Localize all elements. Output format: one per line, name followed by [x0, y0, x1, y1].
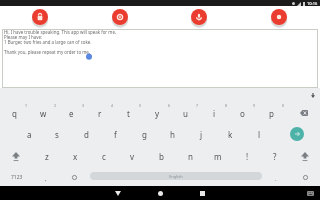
staticText: 3 [82, 103, 85, 108]
button[interactable] [304, 186, 316, 200]
staticText: 1 [25, 103, 28, 108]
staticText: 7123 [11, 174, 23, 181]
staticText: 4 [111, 103, 114, 108]
staticText: e [69, 108, 74, 119]
button[interactable]: m [206, 146, 230, 166]
staticText: 8 [225, 103, 228, 108]
button[interactable]: n [178, 146, 202, 166]
button[interactable] [108, 186, 128, 200]
staticText: d [84, 129, 89, 140]
staticText: 2 [54, 103, 57, 108]
button[interactable] [192, 186, 212, 200]
button[interactable] [293, 104, 315, 122]
staticText: 7 [196, 103, 199, 108]
button[interactable]: j [189, 124, 213, 144]
button[interactable]: h [160, 124, 184, 144]
button[interactable]: v [120, 146, 144, 166]
button[interactable]: ! [235, 146, 259, 166]
staticText: ! [246, 151, 249, 162]
button[interactable] [191, 9, 207, 25]
button[interactable]: z [35, 146, 59, 166]
staticText: x [73, 151, 78, 162]
button[interactable]: a [17, 124, 41, 144]
staticText: b [159, 151, 164, 162]
staticText: z [45, 151, 49, 162]
staticText: i [213, 108, 216, 119]
button[interactable] [295, 147, 315, 165]
staticText: j [200, 129, 203, 140]
staticText: s [55, 129, 59, 140]
staticText: , [45, 175, 47, 183]
staticText: Hi, I have trouble speaking. This app wi… [4, 29, 117, 56]
button[interactable]: ? [263, 146, 287, 166]
button[interactable] [150, 186, 170, 200]
button[interactable]: b [149, 146, 173, 166]
staticText: r [98, 108, 102, 119]
button[interactable] [271, 9, 287, 25]
staticText: f [114, 129, 117, 140]
staticText: c [102, 151, 106, 162]
button[interactable]: o [230, 103, 254, 123]
staticText: a [27, 129, 32, 140]
button[interactable]: , [34, 169, 58, 189]
staticText: y [155, 108, 160, 119]
staticText: 6 [168, 103, 171, 108]
staticText: English [169, 174, 183, 179]
staticText: 0 [282, 103, 285, 108]
staticText: k [228, 129, 233, 140]
staticText: w [40, 108, 47, 119]
button[interactable]: q [2, 103, 26, 123]
button[interactable]: e [59, 103, 83, 123]
button[interactable]: w [31, 103, 55, 123]
staticText: h [170, 129, 175, 140]
button[interactable]: . [264, 169, 288, 189]
button[interactable] [6, 147, 26, 165]
button[interactable]: p [259, 103, 283, 123]
button[interactable]: t [116, 103, 140, 123]
button[interactable]: 7123 [4, 170, 30, 185]
staticText: 5 [139, 103, 142, 108]
button[interactable]: c [92, 146, 116, 166]
button[interactable]: u [173, 103, 197, 123]
button[interactable]: x [63, 146, 87, 166]
button[interactable] [112, 9, 128, 25]
staticText: n [188, 151, 193, 162]
button[interactable]: i [202, 103, 226, 123]
button[interactable]: English [90, 172, 262, 180]
staticText: o [240, 108, 245, 119]
button[interactable] [290, 127, 304, 141]
staticText: . [275, 175, 277, 183]
button[interactable]: Hi, I have trouble speaking. This app wi… [2, 29, 318, 88]
staticText: p [269, 108, 274, 119]
button[interactable]: s [45, 124, 69, 144]
staticText: g [142, 129, 147, 140]
button[interactable]: l [247, 124, 271, 144]
staticText: t [127, 108, 130, 119]
button[interactable]: k [218, 124, 242, 144]
button[interactable]: d [74, 124, 98, 144]
button[interactable]: y [145, 103, 169, 123]
button[interactable] [32, 9, 48, 25]
staticText: v [130, 151, 135, 162]
staticText: m [214, 151, 222, 162]
staticText: 10:16 [307, 1, 318, 6]
staticText: ? [273, 151, 277, 162]
staticText: 9 [253, 103, 256, 108]
staticText: u [183, 108, 188, 119]
button[interactable]: g [132, 124, 156, 144]
staticText: q [12, 108, 17, 119]
button[interactable]: r [88, 103, 112, 123]
button[interactable]: f [103, 124, 127, 144]
staticText: l [258, 129, 261, 140]
